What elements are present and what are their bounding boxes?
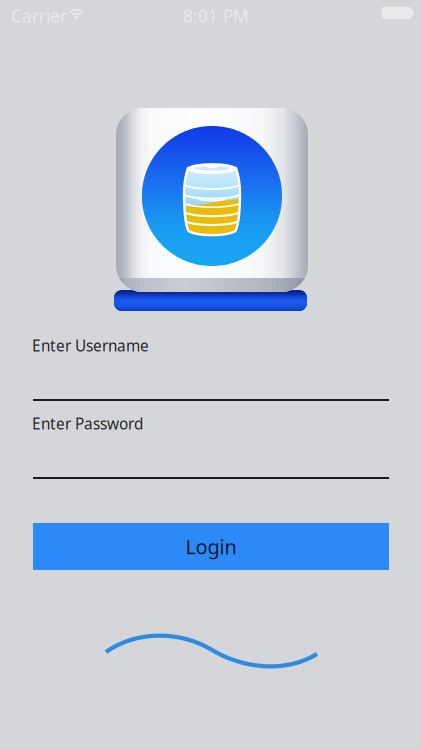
staticText: Enter Username <box>32 335 149 356</box>
staticText: Carrier <box>11 4 67 28</box>
staticText: 8:01 PM <box>183 4 249 28</box>
staticText: Login <box>185 533 236 560</box>
staticText: Enter Password <box>32 413 143 434</box>
button[interactable]: Login <box>33 523 389 570</box>
